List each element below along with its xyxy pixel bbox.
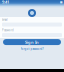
button[interactable]: Forgot password? [20, 45, 43, 52]
button[interactable]: Sign In [3, 39, 61, 45]
staticText: ▮▮ [60, 0, 62, 3]
staticText: Sign In [25, 39, 39, 45]
staticText: Password [2, 28, 14, 32]
staticText: 9:41 [2, 0, 9, 5]
staticText: Forgot password? [20, 47, 43, 51]
staticText: Email [2, 18, 8, 21]
